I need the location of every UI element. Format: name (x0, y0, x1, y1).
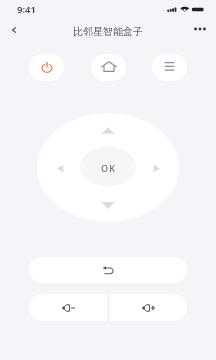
button[interactable]: Volume down (29, 294, 107, 321)
staticText: 9:41 (17, 3, 36, 16)
button[interactable]: Volume up (110, 294, 187, 321)
button[interactable]: Down (97, 195, 119, 216)
button[interactable]: Home (91, 54, 126, 81)
button[interactable]: OK (80, 147, 136, 186)
button[interactable]: Back (2, 18, 26, 42)
button[interactable]: Up (97, 120, 119, 141)
button[interactable]: Left (49, 158, 71, 179)
button[interactable]: Right (146, 158, 168, 179)
button[interactable]: Back (29, 257, 187, 283)
button[interactable]: Menu (152, 54, 187, 81)
button[interactable]: Power (29, 54, 64, 81)
staticText: OK (101, 162, 117, 174)
button[interactable]: More options (188, 17, 212, 41)
staticText: 比邻星智能盒子 (0, 25, 216, 38)
